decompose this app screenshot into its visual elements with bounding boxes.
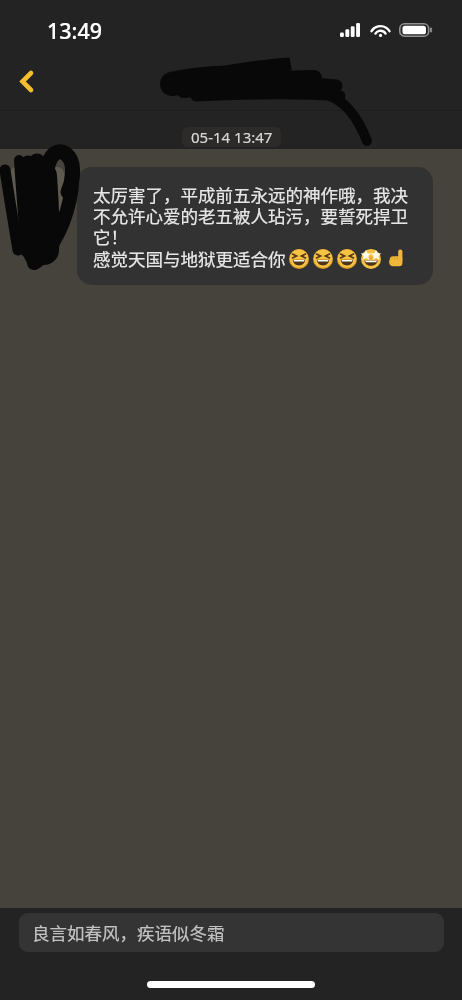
staticText: 良言如春风，疾语似冬霜: [32, 920, 225, 945]
button[interactable]: Back: [2, 57, 50, 105]
button[interactable]: 太厉害了，平成前五永远的神作哦，我决不允许心爱的老五被人玷污，要誓死捍卫它！: [77, 167, 433, 285]
button[interactable]: 良言如春风，疾语似冬霜: [19, 913, 444, 952]
staticText: 13:49: [47, 16, 103, 45]
staticText: 太厉害了，平成前五永远的神作哦，我决不允许心爱的老五被人玷污，要誓死捍卫它！: [93, 185, 421, 248]
staticText: 感觉天国与地狱更适合你: [93, 249, 286, 270]
staticText: 05-14 13:47: [191, 127, 273, 147]
